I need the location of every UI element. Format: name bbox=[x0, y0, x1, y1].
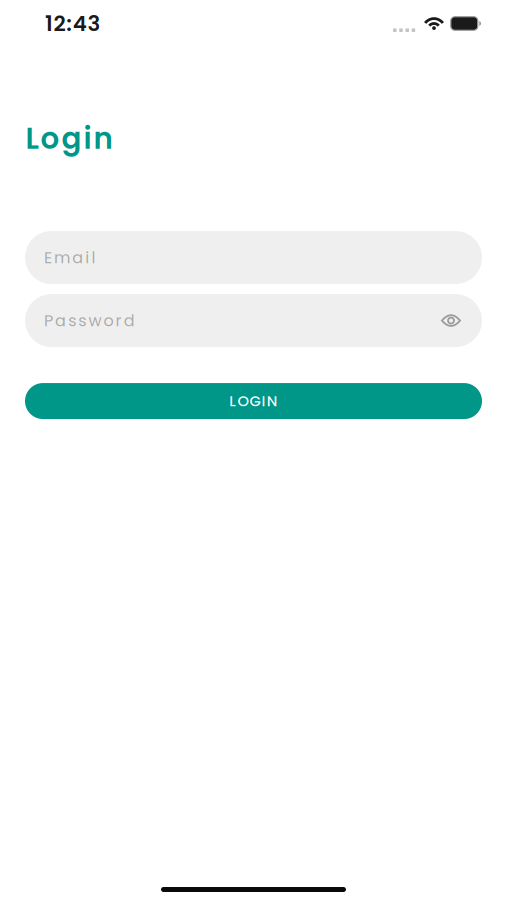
staticText: Email bbox=[44, 246, 95, 269]
staticText: LOGIN bbox=[229, 391, 278, 411]
staticText: 12:43 bbox=[45, 9, 100, 38]
button[interactable]: LOGIN bbox=[25, 383, 482, 419]
staticText: Login bbox=[25, 118, 112, 159]
staticText: Password bbox=[44, 309, 135, 332]
button[interactable]: Show password bbox=[441, 314, 461, 327]
